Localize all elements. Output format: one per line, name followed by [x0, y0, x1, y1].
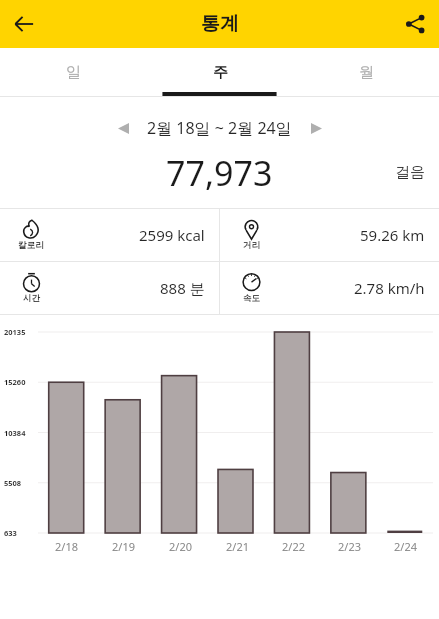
staticText: 59.26 km	[360, 225, 425, 245]
staticText: 통계	[201, 12, 239, 36]
staticText: 10384	[4, 428, 26, 438]
staticText: 2599 kcal	[139, 225, 205, 245]
button[interactable]: 일	[0, 48, 147, 96]
staticText: 2/23	[338, 539, 361, 554]
staticText: 5508	[4, 478, 22, 488]
staticText: 2월 18일 ~ 2월 24일	[147, 117, 292, 139]
button[interactable]: 월	[293, 48, 439, 96]
staticText: 2/24	[394, 539, 417, 554]
staticText: 2/22	[282, 539, 305, 554]
staticText: 칼로리	[18, 240, 44, 251]
button[interactable]: 거리	[220, 209, 439, 261]
staticText: 거리	[243, 240, 260, 251]
staticText: 633	[4, 528, 17, 538]
staticText: 2/18	[55, 539, 78, 554]
staticText: 2.78 km/h	[354, 278, 425, 298]
staticText: 15260	[4, 377, 26, 387]
button[interactable]: Previous week	[109, 114, 137, 142]
button[interactable]: Back	[0, 0, 48, 48]
staticText: 2/20	[169, 539, 192, 554]
staticText: 2/19	[112, 539, 135, 554]
staticText: 20135	[4, 327, 26, 337]
staticText: 월	[359, 63, 374, 82]
staticText: 77,973	[166, 150, 273, 194]
button[interactable]: 주	[147, 48, 293, 96]
button[interactable]: 시간	[0, 262, 219, 314]
staticText: 일	[66, 63, 81, 82]
staticText: 주	[213, 63, 228, 82]
button[interactable]: 속도	[220, 262, 439, 314]
staticText: 시간	[23, 293, 40, 304]
button[interactable]: Share	[391, 0, 439, 48]
button[interactable]: 칼로리	[0, 209, 219, 261]
staticText: 888 분	[160, 278, 205, 298]
button[interactable]: Next week	[302, 114, 330, 142]
staticText: 2/21	[226, 539, 249, 554]
staticText: 걸음	[395, 163, 425, 182]
staticText: 속도	[243, 293, 260, 304]
